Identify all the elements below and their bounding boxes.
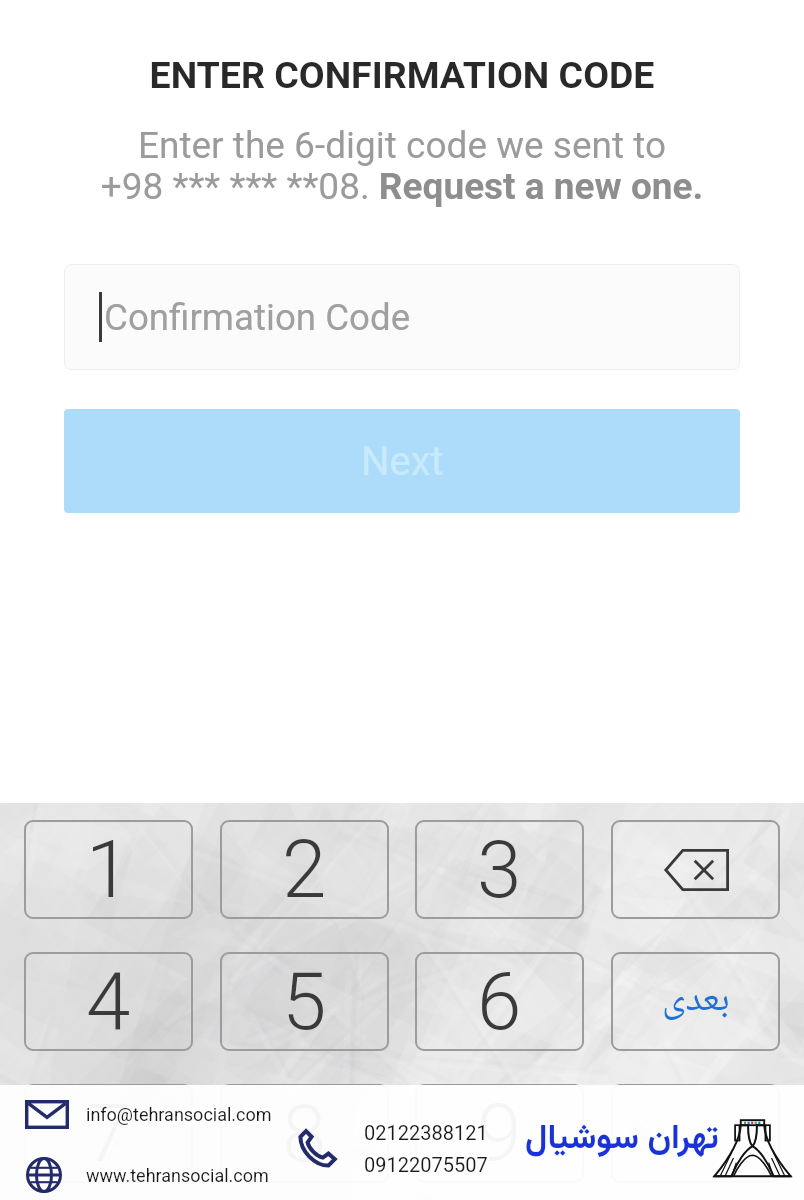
button[interactable]: 8 bbox=[220, 1084, 389, 1183]
staticText: 4 bbox=[86, 955, 131, 1049]
button[interactable]: Next bbox=[64, 409, 740, 513]
button[interactable]: 6 bbox=[415, 952, 584, 1051]
staticText: 7 bbox=[86, 1087, 131, 1181]
button[interactable]: 9 bbox=[415, 1084, 584, 1183]
button[interactable]: Phone bbox=[294, 1117, 488, 1179]
staticText: 9 bbox=[477, 1087, 522, 1181]
button[interactable]: تهران سوشیال bbox=[467, 1109, 800, 1169]
button[interactable]: 3 bbox=[415, 820, 584, 919]
other: Email bbox=[25, 1100, 69, 1129]
staticText: 6 bbox=[477, 955, 522, 1049]
button[interactable]: 4 bbox=[24, 952, 193, 1051]
button[interactable]: 1 bbox=[24, 820, 193, 919]
button[interactable]: بعدی bbox=[611, 952, 780, 1051]
staticText: 8 bbox=[282, 1087, 327, 1181]
other: Delete bbox=[663, 849, 729, 891]
other: Phone bbox=[298, 1128, 338, 1168]
staticText: Next bbox=[361, 438, 444, 485]
staticText: www.tehransocial.com bbox=[86, 1165, 269, 1186]
staticText: 3 bbox=[477, 823, 522, 917]
button[interactable]: Website bbox=[20, 1153, 269, 1197]
staticText: info@tehransocial.com bbox=[86, 1104, 272, 1125]
staticText: Enter the 6-digit code we sent to +98 **… bbox=[0, 124, 804, 208]
staticText: 5 bbox=[282, 955, 327, 1049]
button[interactable]: Confirmation Code bbox=[64, 264, 740, 370]
button[interactable] bbox=[611, 1084, 780, 1183]
staticText: 02122388121 bbox=[364, 1121, 488, 1144]
staticText: 09122075507 bbox=[364, 1153, 488, 1176]
button[interactable]: 7 bbox=[24, 1084, 193, 1183]
button[interactable]: Delete bbox=[611, 820, 780, 919]
staticText: 2 bbox=[282, 823, 327, 917]
button[interactable]: Email bbox=[20, 1094, 272, 1134]
staticText: Confirmation Code bbox=[104, 296, 411, 339]
staticText: بعدی bbox=[662, 969, 730, 1034]
staticText: تهران سوشیال bbox=[525, 1113, 719, 1166]
button[interactable]: 5 bbox=[220, 952, 389, 1051]
staticText: 1 bbox=[86, 823, 131, 917]
other: Website bbox=[26, 1157, 62, 1193]
other: Tehran Social logo bbox=[712, 1119, 793, 1178]
staticText: ENTER CONFIRMATION CODE bbox=[0, 53, 804, 97]
button[interactable]: 2 bbox=[220, 820, 389, 919]
